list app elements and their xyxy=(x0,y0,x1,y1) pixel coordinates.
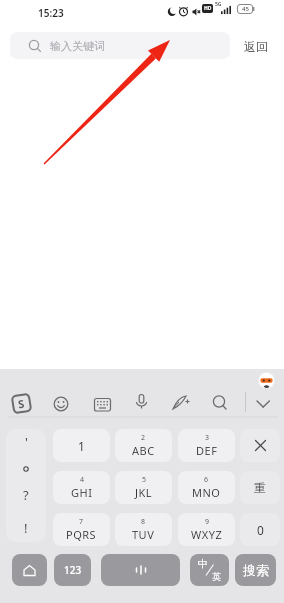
staticText: ABC xyxy=(132,443,155,458)
staticText: 5 xyxy=(142,475,147,485)
staticText: 返回 xyxy=(244,39,268,54)
staticText: 英 xyxy=(212,571,221,582)
button[interactable]: 中 xyxy=(190,554,229,586)
button[interactable]: 8 xyxy=(115,513,172,546)
staticText: DEF xyxy=(196,443,218,458)
button[interactable]: 返回 xyxy=(236,36,276,56)
staticText: ' xyxy=(25,433,28,451)
button[interactable] xyxy=(93,395,112,414)
staticText: 7 xyxy=(79,517,84,527)
button[interactable] xyxy=(170,393,191,414)
button[interactable]: 1 xyxy=(53,429,110,462)
staticText: 15:23 xyxy=(38,6,64,20)
staticText: 输入关键词 xyxy=(50,39,105,53)
staticText: 6 xyxy=(204,475,209,485)
staticText: JKL xyxy=(135,485,153,500)
button[interactable] xyxy=(210,393,230,413)
button[interactable]: 搜索 xyxy=(235,554,276,586)
staticText: 5G xyxy=(215,1,222,8)
staticText: 2 xyxy=(141,433,146,443)
staticText: PQRS xyxy=(66,527,97,542)
button[interactable]: 123 xyxy=(54,554,91,586)
staticText: 中 xyxy=(198,557,208,570)
staticText: 9 xyxy=(205,517,210,527)
staticText: 8 xyxy=(141,517,146,527)
button[interactable] xyxy=(240,429,280,462)
button[interactable] xyxy=(252,393,274,415)
button[interactable]: 3 xyxy=(178,429,235,462)
button[interactable] xyxy=(132,392,151,411)
button[interactable]: 2 xyxy=(115,429,172,462)
button[interactable]: 5 xyxy=(115,471,172,504)
staticText: TUV xyxy=(132,527,155,542)
staticText: 45 xyxy=(242,5,249,13)
staticText: 3 xyxy=(205,433,210,443)
staticText: 搜索 xyxy=(243,562,269,578)
button[interactable] xyxy=(101,554,180,586)
button[interactable]: 4 xyxy=(53,471,110,504)
staticText: MNO xyxy=(192,485,221,500)
button[interactable]: 输入关键词 xyxy=(10,32,230,59)
button[interactable] xyxy=(258,372,275,389)
staticText: 123 xyxy=(64,563,82,577)
button[interactable]: ' xyxy=(6,429,46,542)
button[interactable]: 7 xyxy=(53,513,110,546)
staticText: 重 xyxy=(254,480,266,495)
button[interactable]: S xyxy=(11,393,32,414)
button[interactable] xyxy=(12,554,47,586)
staticText: 4 xyxy=(80,475,85,485)
staticText: ! xyxy=(24,519,28,537)
staticText: 0 xyxy=(257,522,264,538)
staticText: GHI xyxy=(71,485,93,500)
button[interactable]: 6 xyxy=(178,471,235,504)
staticText: ? xyxy=(23,486,29,504)
staticText: HD xyxy=(204,5,212,12)
button[interactable]: 重 xyxy=(240,471,280,504)
staticText: WXYZ xyxy=(191,527,223,542)
staticText: S xyxy=(17,395,26,411)
staticText: 1 xyxy=(78,438,85,454)
button[interactable] xyxy=(51,394,71,414)
button[interactable]: 9 xyxy=(178,513,235,546)
button[interactable]: 0 xyxy=(240,513,280,546)
